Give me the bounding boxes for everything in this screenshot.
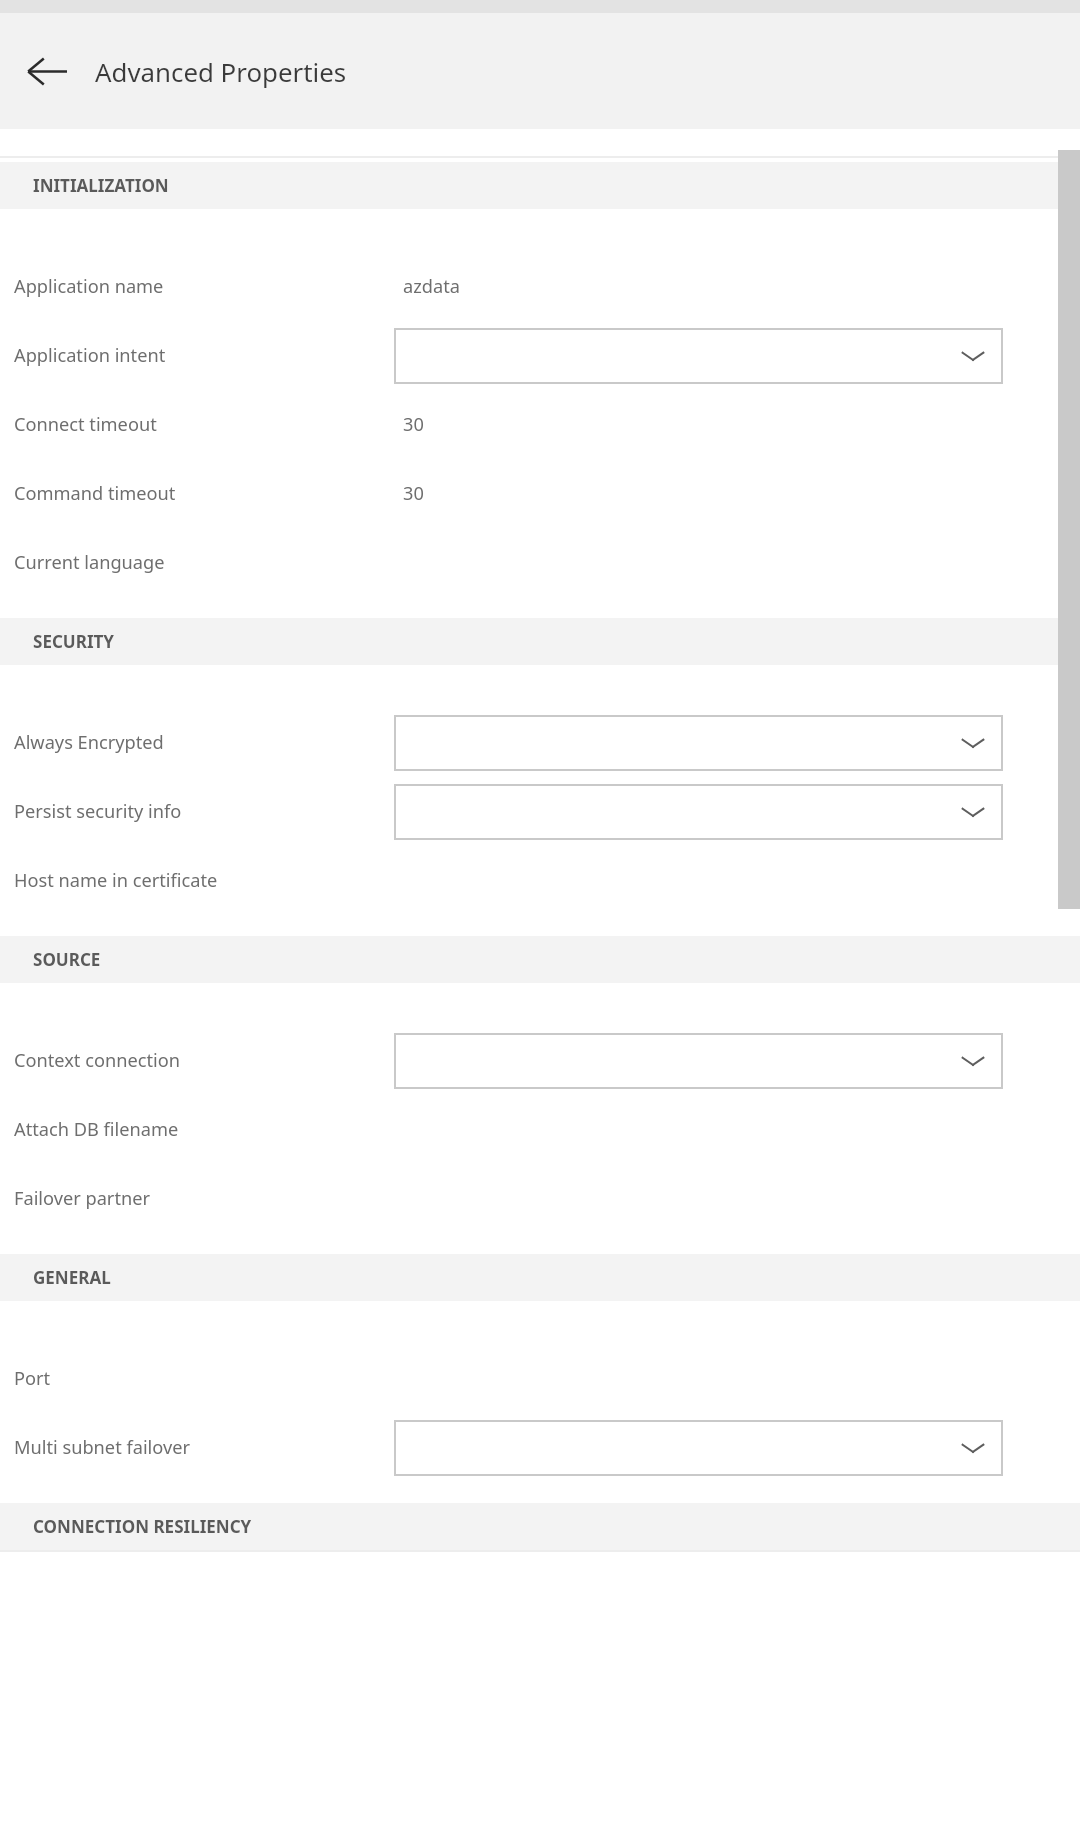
button[interactable]: Always Encrypted bbox=[0, 708, 1080, 777]
button[interactable]: Command timeout bbox=[0, 459, 1080, 528]
button[interactable]: Application name bbox=[0, 252, 1080, 321]
button[interactable]: Persist security info bbox=[394, 784, 1003, 840]
staticText: Attach DB filename bbox=[14, 1117, 179, 1142]
button[interactable]: Always Encrypted bbox=[394, 715, 1003, 771]
button[interactable]: Current language bbox=[0, 528, 1080, 597]
button[interactable]: Context connection bbox=[394, 1033, 1003, 1089]
staticText: CONNECTION RESILIENCY bbox=[33, 1515, 252, 1538]
staticText: Persist security info bbox=[14, 799, 182, 824]
staticText: SECURITY bbox=[33, 630, 115, 653]
staticText: Multi subnet failover bbox=[14, 1435, 190, 1460]
staticText: 30 bbox=[403, 481, 424, 506]
button[interactable]: Persist security info bbox=[0, 777, 1080, 846]
staticText: Always Encrypted bbox=[14, 730, 164, 755]
button[interactable]: Port bbox=[0, 1344, 1080, 1413]
staticText: Connect timeout bbox=[14, 412, 157, 437]
staticText: Failover partner bbox=[14, 1186, 150, 1211]
button[interactable]: Attach DB filename bbox=[0, 1095, 1080, 1164]
button[interactable]: Host name in certificate bbox=[0, 846, 1080, 915]
staticText: INITIALIZATION bbox=[33, 174, 169, 197]
button[interactable]: Application intent bbox=[394, 328, 1003, 384]
staticText: Application name bbox=[14, 274, 164, 299]
button[interactable]: Multi subnet failover bbox=[0, 1413, 1080, 1482]
button[interactable]: Multi subnet failover bbox=[394, 1420, 1003, 1476]
button[interactable]: Connect timeout bbox=[0, 390, 1080, 459]
staticText: GENERAL bbox=[33, 1266, 111, 1289]
staticText: Current language bbox=[14, 550, 165, 575]
button[interactable]: Back bbox=[14, 38, 80, 104]
staticText: Advanced Properties bbox=[95, 54, 347, 89]
staticText: azdata bbox=[403, 274, 460, 299]
button[interactable]: Failover partner bbox=[0, 1164, 1080, 1233]
staticText: Context connection bbox=[14, 1048, 180, 1073]
staticText: 30 bbox=[403, 412, 424, 437]
staticText: Application intent bbox=[14, 343, 166, 368]
button[interactable]: Application intent bbox=[0, 321, 1080, 390]
staticText: Port bbox=[14, 1366, 51, 1391]
staticText: Host name in certificate bbox=[14, 868, 218, 893]
staticText: SOURCE bbox=[33, 948, 101, 971]
button[interactable]: Context connection bbox=[0, 1026, 1080, 1095]
staticText: Command timeout bbox=[14, 481, 176, 506]
